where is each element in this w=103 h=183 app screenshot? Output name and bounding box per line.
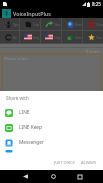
button[interactable]: Recent apps [70,170,90,183]
staticText: Star [96,35,103,40]
button[interactable]: LINE [0,105,103,120]
staticText: Copy [33,22,40,27]
button[interactable]: LINE Keep [0,120,103,135]
button[interactable]: Output language [41,31,61,43]
button[interactable]: Back [15,170,35,183]
button[interactable]: Repeat [0,31,19,43]
button[interactable]: Speak [0,18,19,30]
button[interactable]: ALWAYS [78,157,100,167]
staticText: JUST ONCE [54,160,75,165]
staticText: 8:25 [92,1,101,7]
staticText: 0 chars [86,49,100,54]
button[interactable]: Search [62,18,82,30]
staticText: LINE Keep [19,124,43,131]
button[interactable]: Favourite [83,31,103,43]
staticText: Search [75,22,82,27]
button[interactable]: Clear [83,18,103,30]
button[interactable]: Share [41,18,61,30]
staticText: Share [54,22,61,27]
staticText: Share with [6,95,29,101]
button[interactable]: JUST ONCE [51,157,78,167]
button[interactable]: Voice [62,31,82,43]
staticText: ALWAYS [81,160,97,165]
staticText: Repeat [13,35,19,40]
button[interactable]: Copy [20,18,40,30]
button[interactable]: Home [43,170,63,183]
staticText: Eng [33,35,40,40]
button[interactable]: Input language [20,31,40,43]
staticText: LINE [19,109,30,116]
staticText: Messenger [19,139,44,146]
staticText: Please enter [4,56,29,62]
staticText: VoiceInputPlus [13,10,51,17]
button[interactable] [0,150,103,153]
staticText: Eng [54,35,61,40]
staticText: Speak [13,22,19,27]
button[interactable]: Messenger [0,135,103,150]
staticText: Clear [96,22,103,27]
staticText: Voice [75,35,82,40]
